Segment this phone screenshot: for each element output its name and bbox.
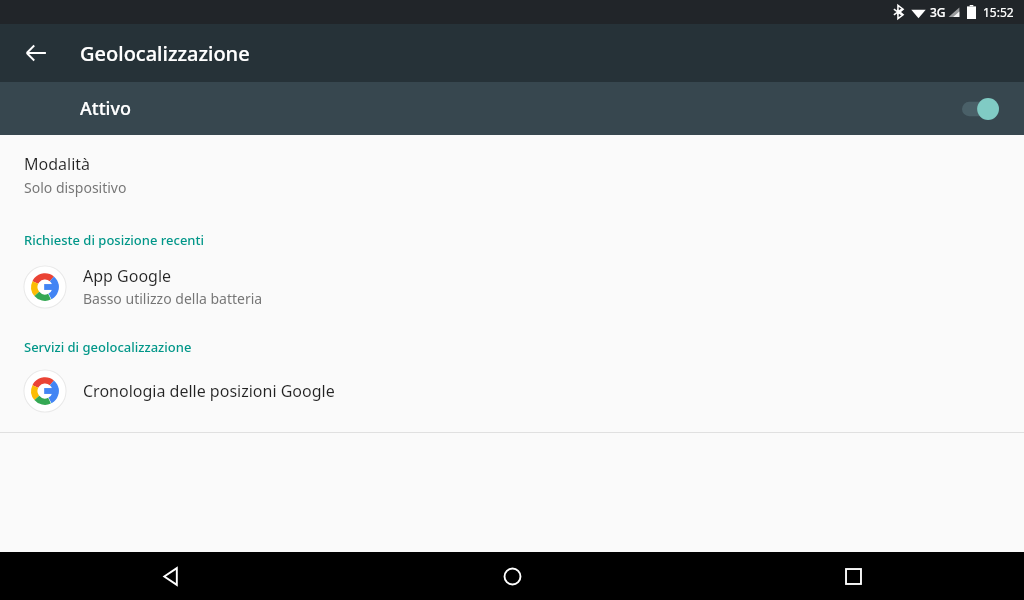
button[interactable]: Home [342,552,683,600]
button[interactable]: Modalità [0,135,1024,211]
staticText: Richieste di posizione recenti [24,231,204,249]
staticText: Cronologia delle posizioni Google [83,380,335,402]
button[interactable]: Attivo [0,82,1024,135]
staticText: Geolocalizzazione [80,40,250,67]
staticText: Attivo [80,96,131,121]
staticText: Basso utilizzo della batteria [83,289,263,308]
staticText: 15:52 [983,4,1014,20]
staticText: Solo dispositivo [24,178,127,197]
staticText: Servizi di geolocalizzazione [24,338,192,356]
button[interactable]: Cronologia delle posizioni Google [0,362,1024,420]
staticText: 3G [930,4,946,20]
button[interactable]: Indietro [12,29,60,77]
button[interactable]: App Google [0,257,1024,316]
staticText: App Google [83,265,172,287]
button[interactable]: Indietro [0,552,342,600]
button[interactable]: Panoramica [683,552,1024,600]
staticText: Modalità [24,153,91,175]
